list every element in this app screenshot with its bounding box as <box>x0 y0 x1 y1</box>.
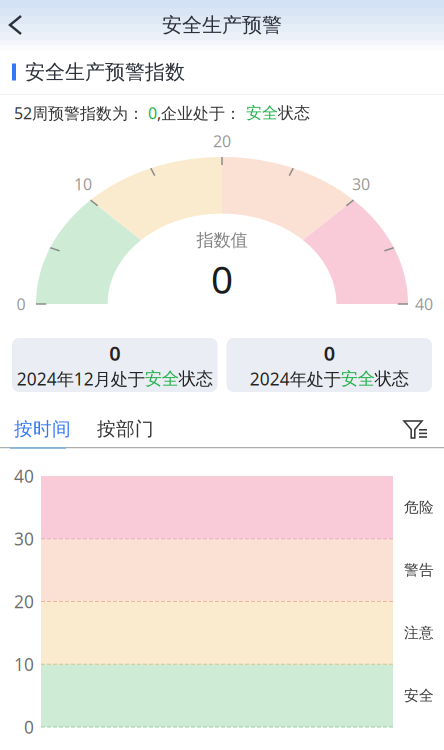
staticText: 安全生产预警指数 <box>25 60 185 84</box>
staticText: 20 <box>14 590 34 613</box>
staticText: 状态 <box>375 368 409 389</box>
staticText: 30 <box>352 173 370 195</box>
staticText: 40 <box>415 293 433 315</box>
staticText: 30 <box>14 527 34 550</box>
staticText: 注意 <box>404 624 434 642</box>
staticText: 按时间 <box>14 417 71 440</box>
staticText: 10 <box>74 173 92 195</box>
staticText: 安全生产预警 <box>162 13 282 37</box>
staticText: 0 <box>211 253 233 304</box>
staticText: 10 <box>14 653 34 676</box>
button[interactable]: Filter <box>393 411 444 447</box>
staticText: 按部门 <box>97 417 154 440</box>
staticText: 安全 <box>241 103 278 123</box>
staticText: 状态 <box>179 368 213 389</box>
staticText: 状态 <box>278 103 310 123</box>
button[interactable]: Back <box>0 0 37 50</box>
staticText: 0 <box>24 715 34 738</box>
staticText: 0 <box>109 340 120 366</box>
staticText: 52周预警指数为： <box>14 102 144 124</box>
staticText: 0 <box>144 102 157 124</box>
staticText: 0 <box>324 340 335 366</box>
button[interactable]: 按部门 <box>83 411 168 447</box>
staticText: 安全 <box>404 687 434 705</box>
staticText: 40 <box>14 464 34 487</box>
staticText: 安全 <box>341 368 375 389</box>
staticText: 2024年12月处于 <box>17 367 145 390</box>
staticText: 危险 <box>404 498 434 516</box>
staticText: 20 <box>213 130 231 152</box>
staticText: 警告 <box>404 561 434 579</box>
staticText: 0 <box>16 293 25 315</box>
staticText: ,企业处于： <box>157 102 241 124</box>
staticText: 指数值 <box>196 230 247 251</box>
staticText: 2024年处于 <box>250 367 341 390</box>
button[interactable]: 按时间 <box>2 411 83 447</box>
staticText: 安全 <box>145 368 179 389</box>
